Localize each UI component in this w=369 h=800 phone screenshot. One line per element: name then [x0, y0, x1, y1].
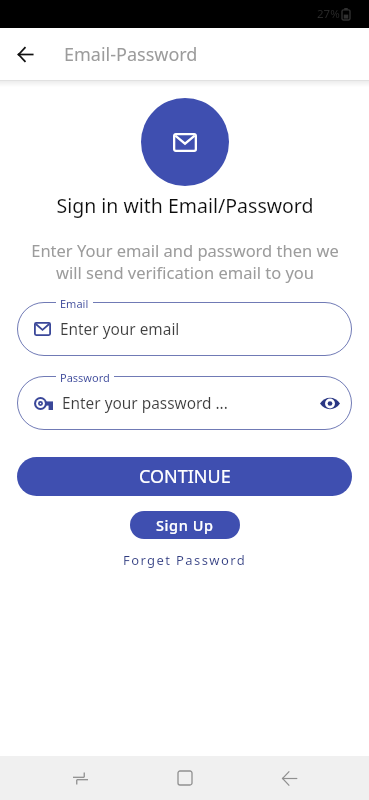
- button[interactable]: CONTINUE: [17, 457, 352, 496]
- button[interactable]: Home: [161, 756, 209, 800]
- button[interactable]: Recents: [56, 756, 104, 800]
- staticText: Sign Up: [156, 515, 214, 535]
- staticText: Enter your email: [60, 319, 180, 340]
- staticText: Enter your password ...: [62, 393, 228, 414]
- staticText: Enter Your email and password then we wi…: [31, 239, 339, 283]
- button[interactable]: Sign Up: [130, 511, 240, 539]
- staticText: Email: [60, 296, 89, 311]
- button[interactable]: Password: [17, 376, 352, 430]
- staticText: 27%: [317, 6, 340, 22]
- button[interactable]: Back: [265, 756, 313, 800]
- button[interactable]: Forget Password: [117, 549, 253, 571]
- staticText: Forget Password: [123, 551, 247, 569]
- button[interactable]: Back: [0, 29, 50, 79]
- staticText: Email-Password: [64, 42, 198, 67]
- staticText: Sign in with Email/Password: [56, 192, 314, 219]
- staticText: CONTINUE: [139, 464, 231, 489]
- button[interactable]: Email: [17, 302, 352, 356]
- button[interactable]: Show password: [318, 388, 342, 418]
- staticText: Password: [60, 370, 110, 385]
